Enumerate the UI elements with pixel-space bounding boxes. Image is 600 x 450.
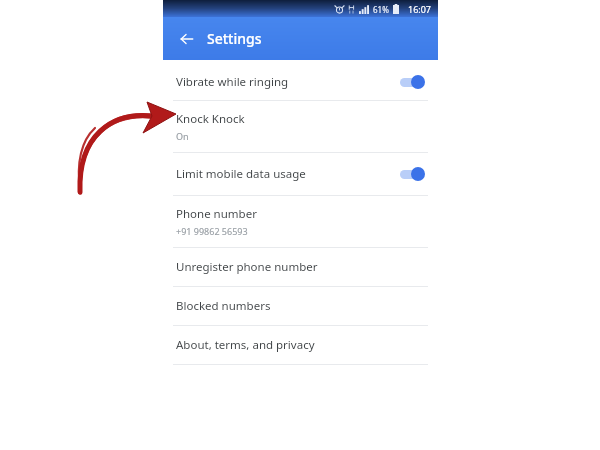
- staticText: 61%: [373, 4, 389, 15]
- button[interactable]: Limit mobile data usage: [163, 153, 438, 195]
- button[interactable]: Knock Knock: [163, 101, 438, 152]
- button[interactable]: Toggle: [398, 166, 428, 182]
- staticText: On: [176, 130, 189, 142]
- staticText: Vibrate while ringing: [176, 74, 398, 90]
- staticText: Phone number: [176, 206, 257, 222]
- staticText: Settings: [207, 29, 262, 48]
- staticText: Knock Knock: [176, 111, 245, 127]
- button[interactable]: Back: [173, 25, 201, 53]
- staticText: 16:07: [408, 3, 432, 15]
- button[interactable]: Toggle: [398, 74, 428, 90]
- button[interactable]: Vibrate while ringing: [163, 63, 438, 100]
- staticText: +91 99862 56593: [176, 225, 248, 237]
- button[interactable]: Unregister phone number: [163, 248, 438, 286]
- button[interactable]: About, terms, and privacy: [163, 326, 438, 364]
- staticText: Limit mobile data usage: [176, 166, 398, 182]
- staticText: Blocked numbers: [176, 298, 271, 314]
- staticText: About, terms, and privacy: [176, 337, 315, 353]
- button[interactable]: Blocked numbers: [163, 287, 438, 325]
- staticText: Unregister phone number: [176, 259, 318, 275]
- button[interactable]: Phone number: [163, 196, 438, 247]
